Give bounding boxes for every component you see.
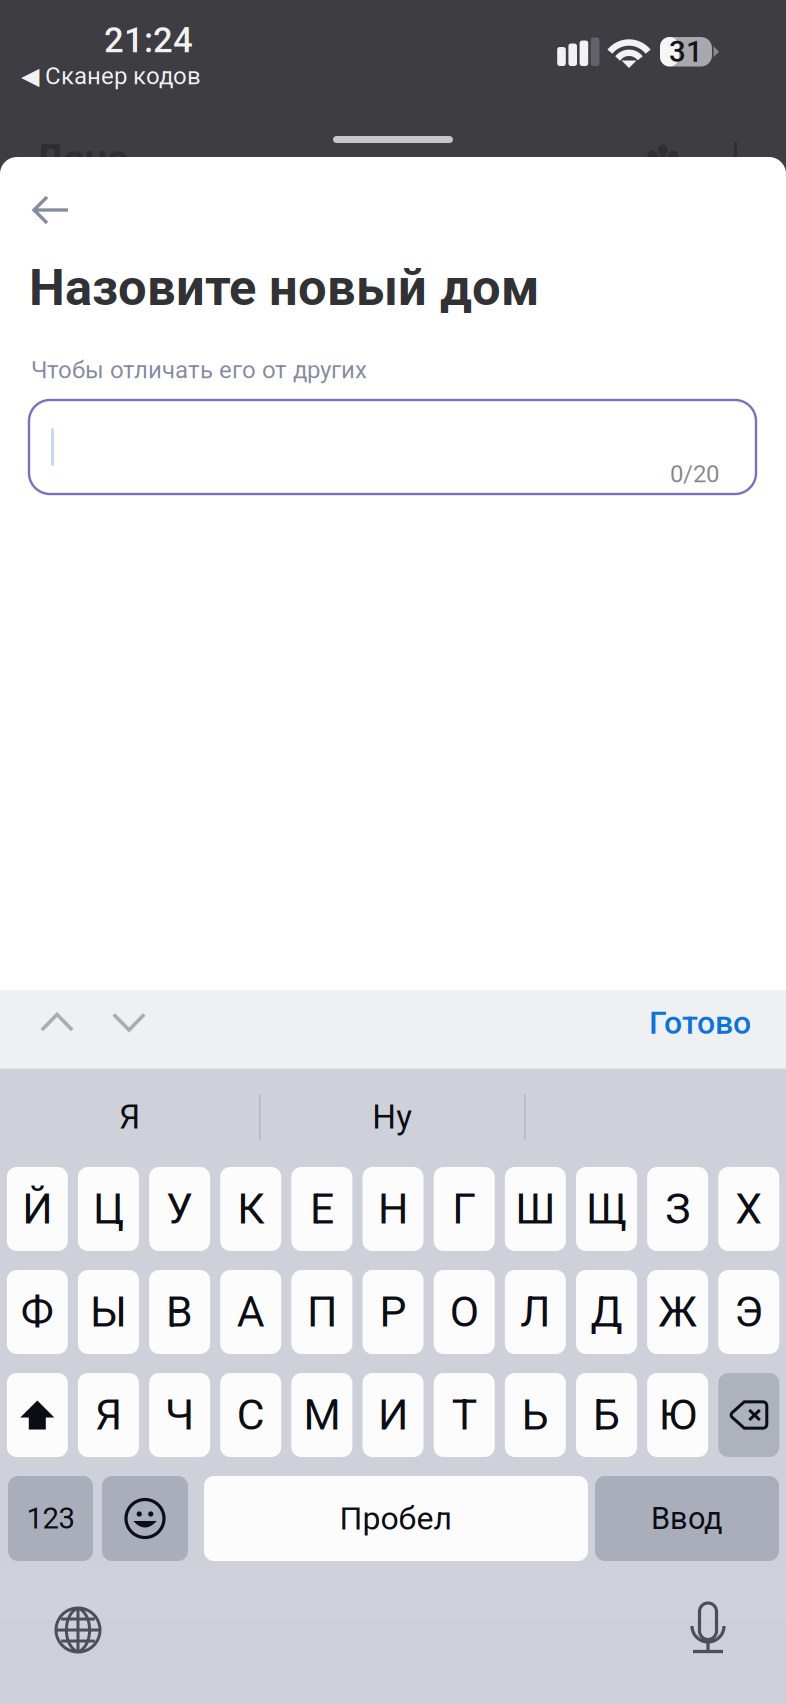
- button[interactable]: Ч: [149, 1373, 210, 1457]
- staticText: И: [378, 1390, 408, 1440]
- staticText: Н: [378, 1184, 408, 1234]
- button[interactable]: М: [291, 1373, 352, 1457]
- staticText: Т: [452, 1390, 477, 1440]
- staticText: О: [450, 1287, 479, 1337]
- staticText: Ш: [515, 1184, 555, 1234]
- button[interactable]: Б: [576, 1373, 637, 1457]
- staticText: 123: [26, 1501, 74, 1536]
- staticText: 0/20: [670, 460, 719, 488]
- staticText: Д: [590, 1287, 622, 1337]
- staticText: Г: [452, 1184, 476, 1234]
- staticText: А: [237, 1287, 265, 1337]
- button[interactable]: Ю: [647, 1373, 708, 1457]
- staticText: Ж: [658, 1287, 697, 1337]
- button[interactable]: Ы: [78, 1270, 139, 1354]
- staticText: Э: [734, 1287, 763, 1337]
- button[interactable]: К: [220, 1167, 281, 1251]
- button[interactable]: Emoji: [102, 1476, 188, 1561]
- staticText: Ц: [93, 1184, 124, 1234]
- button[interactable]: В: [149, 1270, 210, 1354]
- button[interactable]: Р: [363, 1270, 424, 1354]
- button[interactable]: Back: [13, 178, 89, 242]
- button[interactable]: Ну: [261, 1094, 524, 1140]
- staticText: ◀ Сканер кодов: [21, 62, 201, 90]
- staticText: Й: [22, 1184, 52, 1234]
- staticText: Х: [735, 1184, 762, 1234]
- staticText: Б: [593, 1390, 620, 1440]
- button[interactable]: Next field: [112, 1012, 146, 1032]
- button[interactable]: И: [363, 1373, 424, 1457]
- button[interactable]: Я: [0, 1094, 259, 1140]
- button[interactable]: Пробел: [204, 1476, 588, 1561]
- button[interactable]: Ж: [647, 1270, 708, 1354]
- button[interactable]: Ф: [7, 1270, 68, 1354]
- staticText: Я: [119, 1097, 140, 1137]
- button[interactable]: Х: [718, 1167, 779, 1251]
- button[interactable]: Ц: [78, 1167, 139, 1251]
- button[interactable]: Ввод: [595, 1476, 779, 1561]
- staticText: Е: [310, 1184, 334, 1234]
- button[interactable]: Ь: [505, 1373, 566, 1457]
- staticText: Дача ⌄: [34, 136, 172, 183]
- button[interactable]: Change keyboard: [54, 1606, 102, 1654]
- staticText: Пробел: [339, 1500, 452, 1537]
- staticText: М: [303, 1390, 340, 1440]
- button[interactable]: Д: [576, 1270, 637, 1354]
- button[interactable]: С: [220, 1373, 281, 1457]
- staticText: Ну: [372, 1097, 412, 1137]
- staticText: Я: [95, 1390, 122, 1440]
- button[interactable]: Dictation: [690, 1600, 726, 1654]
- staticText: У: [166, 1184, 193, 1234]
- staticText: 21:24: [104, 20, 193, 61]
- staticText: Ь: [522, 1390, 549, 1440]
- button[interactable]: Е: [291, 1167, 352, 1251]
- staticText: К: [237, 1184, 264, 1234]
- button[interactable]: Ш: [505, 1167, 566, 1251]
- button[interactable]: Т: [434, 1373, 495, 1457]
- button[interactable]: Л: [505, 1270, 566, 1354]
- staticText: З: [665, 1184, 690, 1234]
- button[interactable]: Delete: [718, 1373, 779, 1457]
- button[interactable]: Н: [363, 1167, 424, 1251]
- button[interactable]: Щ: [576, 1167, 637, 1251]
- button[interactable]: Shift: [7, 1373, 68, 1457]
- staticText: С: [237, 1390, 265, 1440]
- staticText: Назовите новый дом: [29, 258, 539, 317]
- button[interactable]: Й: [7, 1167, 68, 1251]
- button[interactable]: О: [434, 1270, 495, 1354]
- staticText: Готово: [649, 1004, 751, 1041]
- staticText: Ф: [21, 1287, 54, 1337]
- button[interactable]: Готово: [649, 1004, 751, 1041]
- staticText: Ы: [90, 1287, 127, 1337]
- button[interactable]: А: [220, 1270, 281, 1354]
- button[interactable]: Previous field: [40, 1012, 74, 1032]
- button[interactable]: У: [149, 1167, 210, 1251]
- button[interactable]: 123: [8, 1476, 93, 1561]
- staticText: П: [307, 1287, 337, 1337]
- button[interactable]: Э: [718, 1270, 779, 1354]
- staticText: В: [166, 1287, 193, 1337]
- staticText: 31: [669, 35, 703, 69]
- staticText: Ч: [165, 1390, 194, 1440]
- button[interactable]: П: [291, 1270, 352, 1354]
- staticText: Л: [520, 1287, 550, 1337]
- button[interactable]: З: [647, 1167, 708, 1251]
- staticText: Щ: [586, 1184, 627, 1234]
- staticText: Ю: [659, 1390, 697, 1440]
- staticText: Чтобы отличать его от других: [31, 356, 367, 384]
- staticText: Ввод: [651, 1500, 723, 1536]
- staticText: ✽: [644, 136, 682, 189]
- button[interactable]: Я: [78, 1373, 139, 1457]
- staticText: Р: [380, 1287, 407, 1337]
- button[interactable]: Г: [434, 1167, 495, 1251]
